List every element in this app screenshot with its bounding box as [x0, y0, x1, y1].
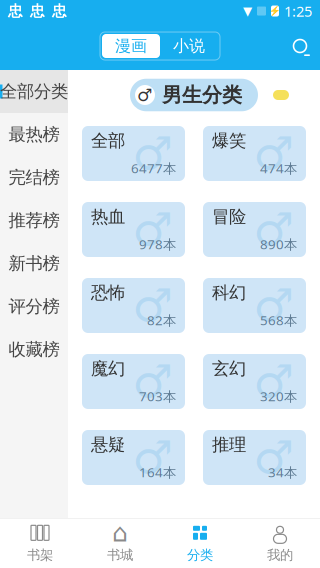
staticText: 568本 — [260, 311, 297, 329]
staticText: 书架 — [27, 547, 53, 563]
staticText: ♂ — [253, 432, 294, 483]
staticText: 忠 — [30, 2, 45, 20]
button[interactable]: 新书榜 — [0, 242, 68, 285]
button[interactable]: ♂ — [203, 354, 306, 409]
staticText: ♂ — [137, 85, 153, 105]
staticText: 推荐榜 — [8, 210, 59, 231]
staticText: ♂ — [253, 356, 294, 407]
staticText: ♂ — [132, 432, 173, 483]
staticText: ⌂ — [112, 518, 128, 547]
staticText: 科幻 — [212, 282, 246, 303]
button[interactable]: 分类 — [160, 518, 240, 568]
staticText: 全部分类 — [0, 81, 68, 102]
staticText: ♂ — [253, 204, 294, 255]
staticText: ♂ — [132, 356, 173, 407]
staticText: 魔幻 — [91, 358, 125, 379]
staticText: ♂ — [132, 204, 173, 255]
button[interactable]: ♂ — [82, 202, 185, 257]
button[interactable]: ♂ — [82, 430, 185, 485]
staticText: 1:25 — [284, 1, 312, 21]
button[interactable]: 评分榜 — [0, 285, 68, 328]
button[interactable]: 全部分类 — [0, 70, 68, 113]
staticText: ♂ — [132, 128, 173, 179]
button[interactable]: ♂ — [82, 126, 185, 181]
staticText: 164本 — [139, 463, 176, 481]
button[interactable]: ♂ — [82, 278, 185, 333]
staticText: 书城 — [107, 547, 133, 563]
button[interactable]: ♂ — [203, 430, 306, 485]
staticText: 爆笑 — [212, 130, 246, 151]
staticText: ♂ — [132, 280, 173, 331]
staticText: 恐怖 — [91, 282, 125, 303]
button[interactable]: 漫画 — [102, 34, 160, 58]
staticText: 34本 — [268, 463, 297, 481]
staticText: 890本 — [260, 235, 297, 253]
button[interactable]: 书架 — [0, 518, 80, 568]
button[interactable]: ♂ — [203, 278, 306, 333]
button[interactable]: ⌂ — [80, 518, 160, 568]
button[interactable]: 收藏榜 — [0, 328, 68, 371]
staticText: 新书榜 — [8, 253, 59, 274]
button[interactable]: 推荐榜 — [0, 199, 68, 242]
staticText: 漫画 — [115, 36, 147, 56]
staticText: 320本 — [260, 387, 297, 405]
button[interactable]: ♂ — [203, 126, 306, 181]
button[interactable]: 完结榜 — [0, 156, 68, 199]
staticText: 474本 — [260, 159, 297, 177]
staticText: 978本 — [139, 235, 176, 253]
staticText: 分类 — [187, 547, 213, 563]
staticText: 评分榜 — [8, 296, 59, 317]
staticText: ⚡ — [269, 6, 281, 16]
staticText: 703本 — [139, 387, 176, 405]
staticText: 小说 — [173, 36, 205, 56]
staticText: 我的 — [267, 547, 293, 563]
staticText: 6477本 — [131, 159, 176, 177]
button[interactable]: 最热榜 — [0, 113, 68, 156]
staticText: 冒险 — [212, 206, 246, 227]
staticText: 玄幻 — [212, 358, 246, 379]
staticText: 男生分类 — [162, 83, 242, 107]
button[interactable]: ♂ — [203, 202, 306, 257]
staticText: 全部 — [91, 130, 125, 151]
staticText: ▼ — [243, 4, 252, 18]
staticText: 收藏榜 — [8, 339, 59, 360]
staticText: 82本 — [147, 311, 176, 329]
staticText: 忠 — [52, 2, 67, 20]
button[interactable]: 我的 — [240, 518, 320, 568]
staticText: ♂ — [253, 128, 294, 179]
staticText: 推理 — [212, 434, 246, 455]
staticText: 忠 — [8, 2, 23, 20]
staticText: 热血 — [91, 206, 125, 227]
button[interactable]: 小说 — [160, 34, 218, 58]
staticText: 悬疑 — [91, 434, 125, 455]
staticText: 最热榜 — [8, 124, 59, 145]
button[interactable]: ♂ — [82, 354, 185, 409]
staticText: 完结榜 — [8, 167, 59, 188]
staticText: ♂ — [253, 280, 294, 331]
button[interactable]: Search — [280, 26, 320, 66]
